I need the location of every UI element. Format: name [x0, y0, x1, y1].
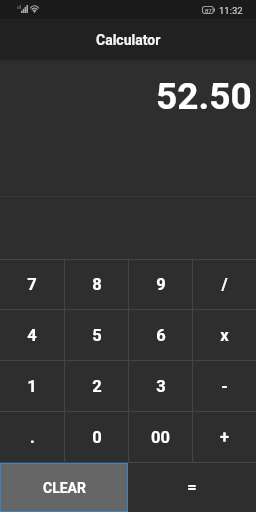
staticText: 8 [92, 275, 102, 294]
staticText: 9 [156, 275, 166, 294]
button[interactable]: x [193, 310, 256, 360]
other: Second SIM signal [17, 5, 21, 9]
staticText: x [220, 326, 229, 345]
other: Battery 87 percent [202, 6, 215, 14]
other: Mobile signal [21, 5, 28, 13]
staticText: 00 [151, 428, 170, 447]
button[interactable]: 3 [129, 361, 192, 411]
button[interactable]: 1 [0, 361, 64, 411]
staticText: CLEAR [43, 480, 86, 496]
button[interactable]: + [193, 412, 256, 462]
staticText: - [221, 377, 228, 396]
staticText: 7 [27, 275, 37, 294]
staticText: 87 [205, 7, 212, 14]
button[interactable]: 2 [65, 361, 128, 411]
button[interactable]: 7 [0, 260, 64, 309]
button[interactable]: CLEAR [0, 463, 128, 512]
button[interactable]: 6 [129, 310, 192, 360]
button[interactable]: . [0, 412, 64, 462]
staticText: 0 [92, 428, 102, 447]
staticText: + [220, 428, 229, 447]
staticText: 5 [92, 326, 102, 345]
staticText: . [30, 428, 35, 447]
staticText: 6 [156, 326, 166, 345]
staticText: 3 [156, 377, 166, 396]
button[interactable]: 4 [0, 310, 64, 360]
other: Wi-Fi [30, 5, 39, 13]
staticText: = [187, 478, 197, 497]
button[interactable]: / [193, 260, 256, 309]
staticText: 2 [92, 377, 102, 396]
staticText: 52.50 [156, 75, 252, 118]
button[interactable]: - [193, 361, 256, 411]
button[interactable]: 00 [129, 412, 192, 462]
button[interactable]: 8 [65, 260, 128, 309]
button[interactable]: 5 [65, 310, 128, 360]
staticText: / [221, 275, 228, 294]
staticText: 4 [27, 326, 37, 345]
button[interactable]: = [128, 463, 256, 512]
button[interactable]: 0 [65, 412, 128, 462]
button[interactable]: 9 [129, 260, 192, 309]
staticText: 1 [27, 377, 37, 396]
staticText: Calculator [96, 32, 161, 48]
staticText: 11:32 [219, 5, 243, 16]
